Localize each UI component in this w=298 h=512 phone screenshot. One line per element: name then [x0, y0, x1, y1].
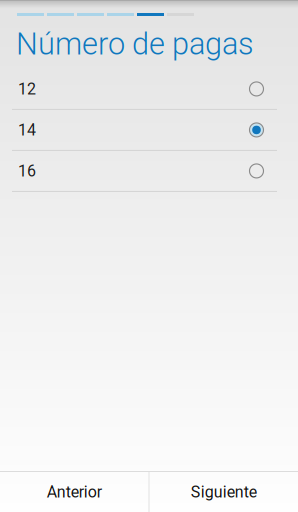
staticText: Número de pagas — [16, 26, 254, 62]
staticText: 16 — [18, 162, 36, 180]
button[interactable]: Siguiente — [149, 472, 298, 512]
button[interactable]: 14 — [0, 110, 298, 151]
staticText: 12 — [18, 80, 36, 98]
staticText: 14 — [18, 121, 36, 139]
button[interactable]: 12 — [0, 69, 298, 110]
staticText: Siguiente — [191, 483, 257, 501]
button[interactable]: 16 — [0, 151, 298, 192]
staticText: Anterior — [47, 483, 102, 501]
button[interactable]: Anterior — [0, 472, 148, 512]
